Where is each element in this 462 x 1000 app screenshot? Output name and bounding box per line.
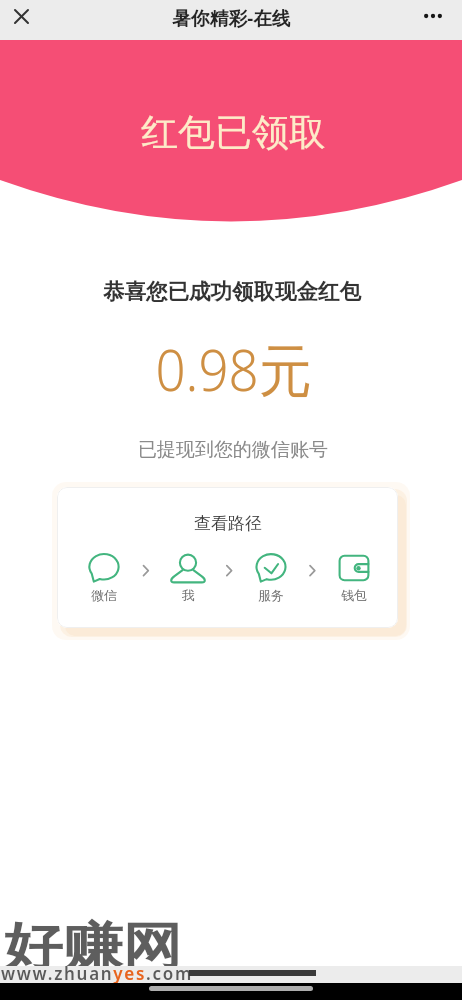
staticText: 服务	[258, 587, 284, 603]
staticText: 红包已领取	[141, 109, 326, 156]
button[interactable]: Close	[0, 0, 43, 36]
button[interactable]: WeChat	[66, 545, 142, 601]
staticText: 查看路径	[194, 513, 262, 534]
staticText: 已提现到您的微信账号	[138, 438, 328, 462]
button[interactable]: Services	[233, 545, 309, 601]
staticText: 暑你精彩-在线	[172, 5, 291, 30]
button[interactable]: Wallet	[316, 545, 392, 601]
staticText: 微信	[91, 587, 117, 603]
staticText: www.zhuanyes.com	[1, 962, 193, 985]
staticText: 好赚网	[3, 915, 182, 979]
button[interactable]: More options	[411, 0, 455, 36]
staticText: 我	[182, 587, 195, 603]
staticText: 0.98元	[155, 330, 312, 408]
button[interactable]: Me	[150, 545, 226, 601]
staticText: 钱包	[341, 587, 367, 603]
staticText: 恭喜您已成功领取现金红包	[103, 278, 361, 305]
